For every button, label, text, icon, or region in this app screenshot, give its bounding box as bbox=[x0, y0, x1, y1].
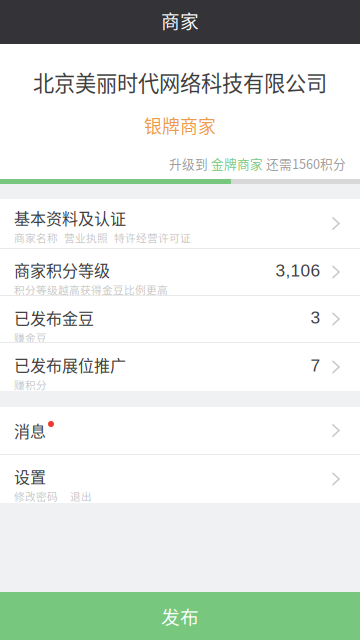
staticText: 北京美丽时代网络科技有限公司 bbox=[33, 69, 327, 95]
staticText: 金牌商家 bbox=[211, 156, 263, 171]
staticText: 已发布展位推广 bbox=[14, 355, 126, 374]
staticText: 银牌商家 bbox=[144, 115, 216, 136]
button[interactable]: 已发布展位推广 bbox=[0, 343, 360, 391]
button[interactable]: 设置 bbox=[0, 455, 360, 503]
staticText: 还需1560积分 bbox=[263, 156, 346, 171]
staticText: 设置 bbox=[14, 467, 46, 486]
staticText: 商家名称 营业执照 特许经营许可证 bbox=[14, 231, 191, 244]
button[interactable]: 已发布金豆 bbox=[0, 296, 360, 342]
button[interactable]: 发布 bbox=[0, 592, 360, 640]
staticText: 商家 bbox=[161, 9, 199, 31]
staticText: 3 bbox=[310, 310, 320, 325]
staticText: 基本资料及认证 bbox=[14, 208, 126, 227]
staticText: 7 bbox=[310, 358, 320, 373]
staticText: 赚金豆 bbox=[14, 331, 47, 344]
staticText: 修改密码 退出 bbox=[14, 490, 92, 502]
button[interactable]: 基本资料及认证 bbox=[0, 199, 360, 248]
button[interactable]: 消息 bbox=[0, 407, 360, 454]
staticText: 商家积分等级 bbox=[14, 260, 110, 279]
staticText: 升级到 bbox=[169, 156, 211, 171]
staticText: 赚积分 bbox=[14, 378, 47, 391]
staticText: 发布 bbox=[161, 605, 199, 627]
staticText: 积分等级越高获得金豆比例更高 bbox=[14, 283, 168, 296]
staticText: 消息 bbox=[14, 421, 46, 440]
staticText: 3,106 bbox=[275, 263, 320, 278]
button[interactable]: 商家积分等级 bbox=[0, 249, 360, 295]
staticText: 已发布金豆 bbox=[14, 308, 94, 327]
